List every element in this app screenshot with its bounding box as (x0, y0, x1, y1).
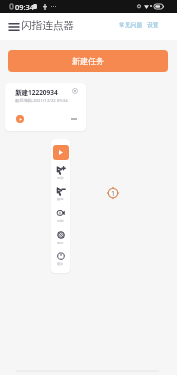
button[interactable]: Tap point 1 (105, 185, 121, 201)
button[interactable]: 添加 (51, 166, 70, 180)
button[interactable]: 常见问题 (117, 18, 145, 31)
button[interactable]: Delete task (70, 86, 80, 96)
staticText: 闪指连点器 (21, 19, 74, 32)
button[interactable]: Run task (16, 115, 24, 123)
staticText: 新建任务 (72, 56, 104, 66)
button[interactable]: 新建任务 (8, 50, 168, 72)
staticText: 常见问题 (119, 21, 143, 28)
staticText: 退出 (57, 262, 64, 266)
staticText: 删除 (57, 197, 64, 201)
button[interactable]: 设置 (145, 18, 161, 31)
staticText: 回放 (57, 241, 64, 245)
button[interactable]: Menu (5, 18, 23, 35)
button[interactable]: 回放 (51, 231, 70, 245)
button[interactable]: 录制 (51, 209, 70, 223)
staticText: 09:34 (15, 2, 34, 12)
button[interactable]: More options (69, 114, 79, 124)
staticText: 1 (111, 189, 115, 197)
staticText: 录制 (57, 219, 64, 223)
staticText: 新建12220934 (15, 88, 58, 97)
button[interactable]: 新建12220934 (5, 83, 86, 131)
button[interactable]: 退出 (51, 252, 70, 266)
button[interactable]: Start (53, 145, 69, 160)
button[interactable]: 删除 (51, 187, 70, 201)
staticText: 设置 (147, 21, 159, 28)
staticText: 添加 (57, 176, 64, 180)
staticText: 最后编辑:2021/12/22 09:34 (15, 97, 68, 103)
